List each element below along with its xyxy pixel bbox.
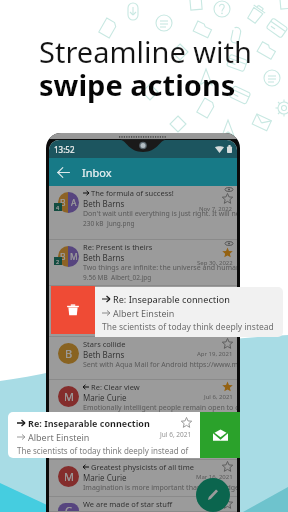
staticText: Albert Einstein [83,298,138,309]
staticText: Jul 6, 2021 [204,436,233,444]
staticText: Jul 6, 2021 [204,299,233,307]
staticText: 4 [56,204,60,211]
staticText: The scientists of today think deeply ins… [83,309,225,319]
staticText: Jul 6, 2021 [160,430,192,439]
staticText: Feb 2, 2021 [200,510,233,512]
staticText: Marie Curie [83,472,127,483]
staticText: Streamline with [39,32,252,71]
button[interactable]: M [49,380,237,423]
staticText: Marie Curie [83,392,127,403]
button[interactable]: Re: Inseparable connection [95,287,283,337]
staticText: The scientists of today think deeply ins… [83,446,237,456]
staticText: Sep 30, 2022 [197,259,233,267]
button[interactable]: Compose [196,478,230,512]
button[interactable]: B [49,186,237,240]
staticText: 230 kB Jung.png [83,219,135,228]
staticText: Emotionally intelligent people remain op… [83,403,237,413]
staticText: Inbox [82,165,112,180]
staticText: M [70,251,78,263]
staticText: B [60,197,66,209]
staticText: B [60,251,66,263]
button[interactable]: Back [53,162,73,182]
staticText: Sent with Aqua Mail for Android https://… [83,360,237,370]
button[interactable]: Re: Inseparable connection [8,412,200,458]
staticText: C [65,503,72,512]
staticText: Re: Inseparable connection [113,293,230,305]
staticText: Re: Inseparable connection [91,425,187,435]
staticText: The scientists of today think deeply ins… [17,445,200,458]
staticText: Carl Sagan [83,509,124,512]
staticText: Nov 7, 2022 [199,205,233,213]
button[interactable]: A [49,286,237,337]
button[interactable]: Delete [51,286,95,334]
button[interactable]: B [49,337,237,380]
button[interactable]: Back [49,158,237,186]
staticText: The formula of success! [91,188,174,198]
staticText: M [64,469,74,484]
staticText: A [71,197,77,209]
button[interactable]: A [49,423,237,460]
staticText: Beth Barns [83,349,125,360]
staticText: A [65,432,73,447]
staticText: Albert Einstein [28,431,90,443]
staticText: B [65,346,73,361]
button[interactable]: B [49,240,237,286]
staticText: M [64,389,74,404]
staticText: 13:52 [54,144,75,155]
staticText: Greatest physicists of all time [91,462,194,472]
staticText: Re: Inseparable connection [28,417,150,429]
staticText: Albert Einstein [83,435,138,446]
staticText: A [65,295,73,310]
staticText: Beth Barns [83,252,125,263]
staticText: Two things are infinite: the universe an… [83,263,237,273]
staticText: Don't wait until everything is just righ… [83,209,237,219]
staticText: swipe actions [39,65,236,104]
staticText: Re: Present is theirs [83,242,153,252]
staticText: Jul 6, 2021 [204,393,233,401]
staticText: Re: Inseparable connection [91,288,187,298]
button[interactable]: Archive [200,412,240,458]
staticText: 2 [56,258,60,265]
staticText: Albert Einstein [113,307,175,319]
staticText: Imagination is more important than knowl… [83,483,237,493]
staticText: Stars collide [83,339,126,349]
button[interactable]: C [49,497,237,512]
staticText: Beth Barns [83,198,125,209]
staticText: 9.56 MB Albert_02.jpg [83,273,152,282]
staticText: We are made of star stuff [83,499,173,509]
button[interactable]: M [49,460,237,497]
staticText: The scientists of today think deeply ins… [102,321,274,333]
staticText: Mar 16, 2021 [196,473,233,481]
staticText: Apr 19, 2021 [197,350,233,358]
staticText: Re: Clear view [91,382,140,392]
